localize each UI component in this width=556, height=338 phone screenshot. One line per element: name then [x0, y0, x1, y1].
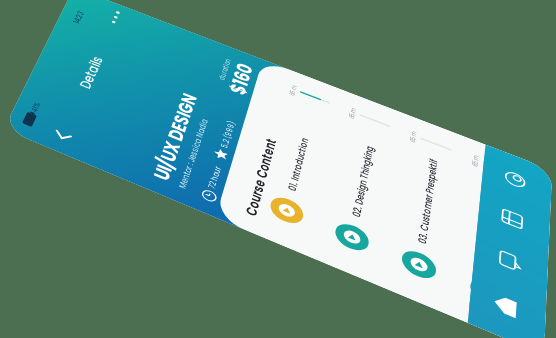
button[interactable]: Course details phone mockup: [0, 0, 556, 338]
